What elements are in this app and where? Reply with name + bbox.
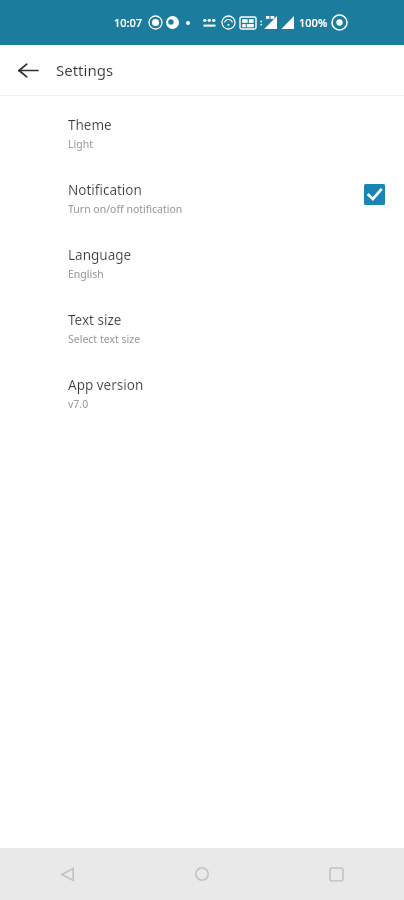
staticText: Language — [68, 246, 132, 264]
button[interactable]: Back — [8, 50, 48, 90]
button[interactable]: Recent apps — [269, 848, 404, 900]
staticText: Settings — [56, 60, 114, 80]
staticText: Text size — [68, 311, 122, 329]
staticText: English — [68, 267, 104, 281]
staticText: Light — [68, 137, 93, 151]
button[interactable]: Language — [0, 243, 404, 308]
staticText: 100% — [299, 15, 328, 30]
staticText: Select text size — [68, 332, 141, 346]
staticText: Turn on/off notification — [68, 202, 183, 216]
staticText: 10:07 — [114, 15, 143, 30]
button[interactable]: Theme — [0, 113, 404, 178]
button[interactable]: Home — [134, 848, 269, 900]
button[interactable]: Notification — [0, 178, 404, 243]
button[interactable]: Notification toggle — [364, 184, 385, 205]
staticText: v7.0 — [68, 397, 89, 411]
staticText: App version — [68, 376, 144, 394]
staticText: Theme — [68, 116, 112, 134]
button[interactable]: App version — [0, 373, 404, 438]
staticText: Notification — [68, 181, 142, 199]
button[interactable]: Back — [0, 848, 134, 900]
button[interactable]: Text size — [0, 308, 404, 373]
